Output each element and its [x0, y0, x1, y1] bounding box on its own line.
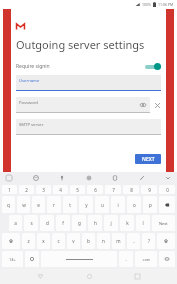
button[interactable]: k — [120, 215, 134, 231]
button[interactable]: g — [72, 215, 86, 231]
button[interactable]: 4 — [53, 185, 68, 194]
button[interactable]: d — [40, 215, 54, 231]
button[interactable]: , — [127, 233, 140, 249]
staticText: e — [37, 202, 40, 208]
button[interactable]: 2 — [19, 185, 34, 194]
staticText: SMTP server — [19, 122, 44, 128]
staticText: 3 — [42, 187, 45, 193]
button[interactable]: Backspace — [159, 196, 175, 213]
staticText: 5 — [76, 187, 79, 193]
button[interactable]: Collapse — [163, 173, 173, 183]
staticText: t — [69, 202, 71, 208]
button[interactable]: w — [17, 196, 30, 213]
staticText: b — [87, 238, 90, 244]
button[interactable]: Sticker — [4, 173, 14, 183]
button[interactable]: x — [37, 233, 50, 249]
staticText: a — [14, 220, 17, 226]
button[interactable]: 0 — [159, 185, 175, 194]
button[interactable]: h — [88, 215, 102, 231]
button[interactable]: z — [22, 233, 35, 249]
button[interactable]: o — [127, 196, 141, 213]
staticText: v — [72, 238, 75, 244]
staticText: o — [133, 202, 136, 208]
button[interactable]: q — [2, 196, 15, 213]
staticText: i — [117, 202, 119, 208]
staticText: 8 — [130, 187, 133, 193]
button[interactable] — [41, 251, 117, 267]
button[interactable]: Next — [152, 215, 175, 231]
staticText: 0 — [166, 187, 169, 193]
button[interactable]: Home — [80, 269, 98, 284]
button[interactable]: s — [24, 215, 38, 231]
staticText: .com — [142, 257, 150, 262]
staticText: c — [57, 238, 60, 244]
button[interactable]: Password — [16, 97, 150, 113]
button[interactable]: SMTP server — [16, 119, 161, 135]
button[interactable]: Emoji — [25, 251, 39, 267]
button[interactable]: 1#+ — [2, 251, 23, 267]
staticText: q — [7, 202, 10, 208]
button[interactable]: i — [111, 196, 125, 213]
button[interactable]: 7 — [105, 185, 121, 194]
button[interactable]: 5 — [70, 185, 85, 194]
button[interactable]: v — [67, 233, 80, 249]
staticText: 4 — [59, 187, 62, 193]
button[interactable]: Microphone — [57, 173, 67, 183]
button[interactable]: Back — [31, 269, 49, 284]
button[interactable]: Recents — [128, 269, 146, 284]
button[interactable]: u — [95, 196, 109, 213]
staticText: h — [94, 220, 97, 226]
button[interactable]: t — [63, 196, 77, 213]
button[interactable]: Username — [16, 75, 161, 91]
staticText: NEXT — [142, 156, 155, 163]
button[interactable]: n — [97, 233, 110, 249]
button[interactable]: b — [82, 233, 95, 249]
staticText: x — [42, 238, 45, 244]
button[interactable]: y — [79, 196, 93, 213]
staticText: 100% — [142, 2, 151, 7]
button[interactable]: f — [56, 215, 70, 231]
button[interactable]: p — [143, 196, 157, 213]
button[interactable]: Handwriting — [137, 173, 147, 183]
button[interactable]: 1 — [2, 185, 17, 194]
button[interactable]: Shift — [157, 233, 175, 249]
button[interactable]: Require signin — [16, 60, 161, 72]
button[interactable]: l — [136, 215, 150, 231]
button[interactable]: NEXT — [135, 154, 161, 164]
staticText: 9 — [148, 187, 151, 193]
staticText: g — [78, 220, 81, 226]
staticText: 1#+ — [9, 257, 16, 262]
staticText: Password — [19, 100, 38, 106]
staticText: m — [116, 238, 121, 244]
button[interactable]: Show password — [139, 101, 147, 109]
staticText: Outgoing server settings — [16, 37, 145, 52]
staticText: y — [85, 202, 88, 208]
button[interactable]: m — [112, 233, 125, 249]
button[interactable]: Clear — [153, 101, 161, 109]
staticText: 6 — [94, 187, 97, 193]
staticText: . — [125, 256, 127, 262]
button[interactable]: 3 — [36, 185, 51, 194]
button[interactable]: Settings — [84, 173, 94, 183]
button[interactable]: Keyboard options — [159, 251, 175, 267]
staticText: Next — [159, 221, 168, 226]
button[interactable]: e — [32, 196, 45, 213]
staticText: , — [133, 238, 135, 244]
button[interactable]: 9 — [141, 185, 157, 194]
button[interactable]: c — [52, 233, 65, 249]
button[interactable]: Shift — [2, 233, 20, 249]
button[interactable]: j — [104, 215, 118, 231]
button[interactable]: 8 — [123, 185, 139, 194]
button[interactable]: Emoji — [31, 173, 41, 183]
button[interactable]: a — [9, 215, 22, 231]
staticText: d — [46, 220, 49, 226]
button[interactable]: ? — [142, 233, 155, 249]
staticText: Username — [19, 78, 40, 84]
staticText: n — [102, 238, 105, 244]
staticText: j — [110, 220, 112, 226]
button[interactable]: r — [47, 196, 61, 213]
button[interactable]: .com — [135, 251, 157, 267]
button[interactable]: Clipboard — [110, 173, 120, 183]
button[interactable]: 6 — [87, 185, 103, 194]
